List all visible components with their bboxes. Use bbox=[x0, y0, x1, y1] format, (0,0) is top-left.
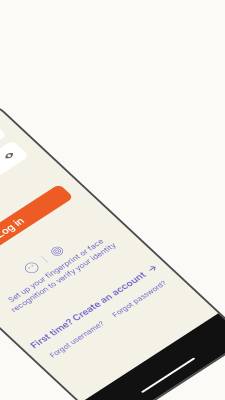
staticText: Password bbox=[60, 141, 164, 168]
staticText: Log in bbox=[163, 295, 225, 326]
button[interactable]: Log in bbox=[4, 285, 225, 335]
